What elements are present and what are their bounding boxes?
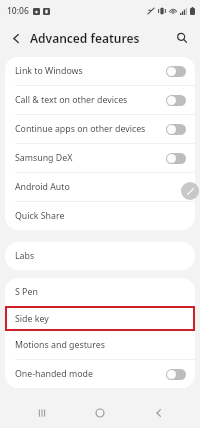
staticText: Call & text on other devices — [15, 94, 128, 106]
staticText: 10:06 — [7, 5, 29, 17]
button[interactable]: Continue apps on other devices — [5, 115, 195, 143]
button[interactable]: Call & text on other devices — [5, 86, 195, 114]
button[interactable]: Search — [171, 27, 193, 49]
staticText: One-handed mode — [15, 368, 93, 380]
button[interactable]: Quick Share — [5, 202, 195, 230]
button[interactable]: Toggle — [166, 66, 186, 77]
staticText: Motions and gestures — [15, 339, 105, 351]
staticText: Continue apps on other devices — [15, 123, 146, 135]
button[interactable]: Edit — [181, 182, 199, 200]
button[interactable]: Toggle — [166, 124, 186, 135]
staticText: Android Auto — [15, 181, 70, 193]
staticText: Link to Windows — [15, 65, 83, 77]
button[interactable]: Toggle — [166, 369, 186, 380]
staticText: Samsung DeX — [15, 152, 73, 164]
button[interactable]: Motions and gestures — [5, 331, 195, 359]
button[interactable]: Back — [142, 398, 176, 428]
button[interactable]: S Pen — [5, 278, 195, 306]
button[interactable]: Link to Windows — [5, 57, 195, 85]
button[interactable]: Labs — [5, 242, 195, 270]
button[interactable]: One-handed mode — [5, 360, 195, 388]
staticText: Labs — [15, 250, 35, 262]
staticText: S Pen — [15, 286, 38, 298]
button[interactable]: Samsung DeX — [5, 144, 195, 172]
staticText: Advanced features — [30, 30, 140, 46]
button[interactable]: Navigate up — [5, 27, 27, 49]
button[interactable]: Android Auto — [5, 173, 195, 201]
button[interactable]: Recent apps — [25, 398, 59, 428]
button[interactable]: Home — [83, 398, 117, 428]
button[interactable]: Side key — [5, 306, 195, 331]
button[interactable]: Toggle — [166, 95, 186, 106]
staticText: Side key — [15, 313, 49, 325]
staticText: Quick Share — [15, 210, 65, 222]
button[interactable]: Toggle — [166, 153, 186, 164]
